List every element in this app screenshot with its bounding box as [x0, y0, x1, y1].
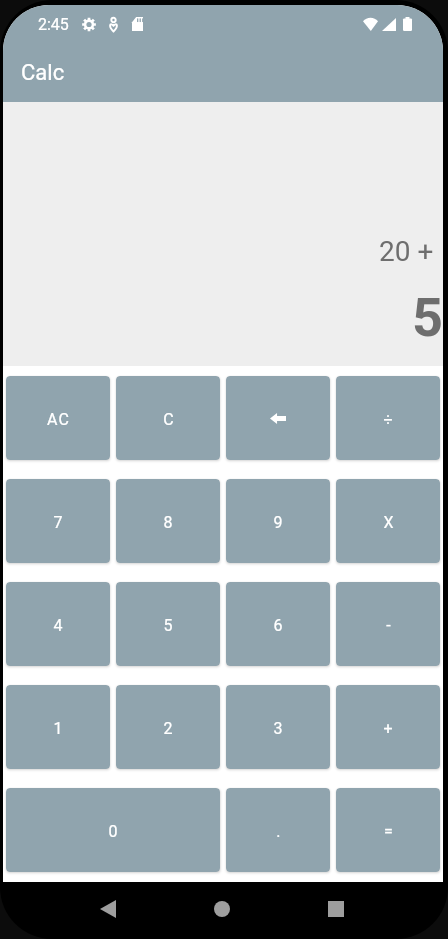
button[interactable]: 7: [6, 479, 110, 563]
button[interactable]: 1: [6, 685, 110, 769]
button[interactable]: 8: [116, 479, 220, 563]
button[interactable]: C: [116, 376, 220, 460]
staticText: C: [163, 410, 175, 429]
button[interactable]: ÷: [336, 376, 440, 460]
staticText: 8: [163, 513, 174, 532]
staticText: ÷: [383, 410, 394, 429]
staticText: =: [384, 822, 394, 841]
staticText: 2: [163, 719, 174, 738]
button[interactable]: AC: [6, 376, 110, 460]
button[interactable]: X: [336, 479, 440, 563]
button[interactable]: -: [336, 582, 440, 666]
staticText: -: [386, 616, 392, 635]
staticText: 4: [53, 616, 64, 635]
button[interactable]: 0: [6, 788, 220, 872]
button[interactable]: 2: [116, 685, 220, 769]
staticText: 9: [273, 513, 284, 532]
staticText: 3: [273, 719, 284, 738]
staticText: 5: [163, 616, 174, 635]
button[interactable]: 5: [116, 582, 220, 666]
staticText: 6: [273, 616, 284, 635]
button[interactable]: 4: [6, 582, 110, 666]
staticText: Calc: [21, 60, 65, 86]
staticText: AC: [47, 410, 70, 429]
button[interactable]: +: [336, 685, 440, 769]
staticText: 20 +: [379, 235, 434, 268]
button[interactable]: Back: [86, 887, 130, 931]
staticText: 7: [53, 513, 64, 532]
staticText: 1: [53, 719, 64, 738]
button[interactable]: .: [226, 788, 330, 872]
button[interactable]: 9: [226, 479, 330, 563]
staticText: +: [383, 719, 394, 738]
button[interactable]: Recent apps: [314, 887, 358, 931]
button[interactable]: Home: [200, 887, 244, 931]
button[interactable]: 3: [226, 685, 330, 769]
button[interactable]: =: [336, 788, 440, 872]
staticText: 2:45: [38, 15, 69, 34]
staticText: 5: [412, 286, 443, 349]
staticText: .: [276, 822, 282, 841]
button[interactable]: 6: [226, 582, 330, 666]
staticText: X: [383, 513, 395, 532]
staticText: 0: [108, 822, 119, 841]
button[interactable]: Backspace: [226, 376, 330, 460]
